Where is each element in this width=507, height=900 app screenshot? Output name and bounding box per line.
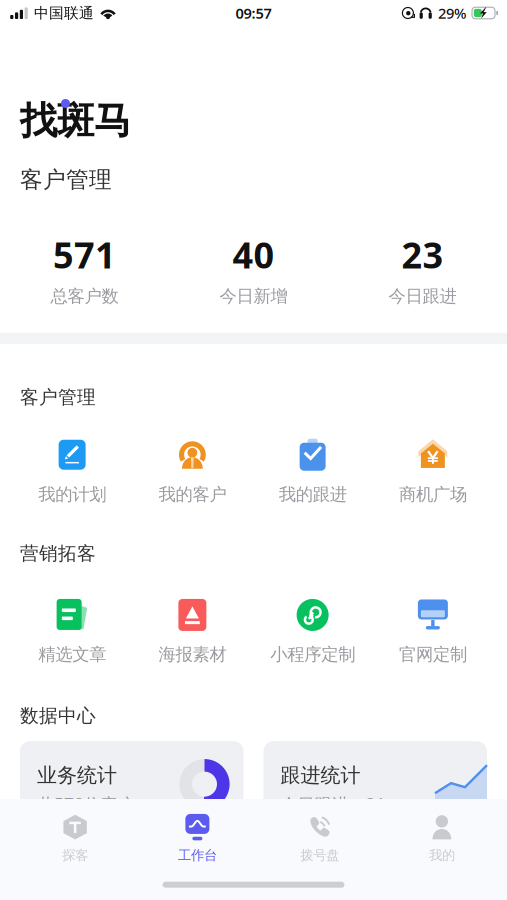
staticText: 总客户数 [50, 285, 118, 307]
staticText: 09:57 [235, 3, 271, 23]
staticText: 精选文章 [38, 644, 106, 665]
button[interactable]: 拨号盘 [258, 814, 381, 863]
staticText: 今日新增 [219, 285, 287, 307]
button[interactable]: 工作台 [136, 814, 258, 863]
staticText: 探客 [62, 847, 88, 863]
staticText: 我的计划 [38, 484, 106, 505]
button[interactable]: 小程序定制 [252, 600, 373, 665]
staticText: 数据中心 [20, 704, 96, 727]
button[interactable]: 海报素材 [132, 600, 252, 665]
staticText: 找斑马 [20, 98, 131, 144]
staticText: 官网定制 [399, 644, 467, 665]
button[interactable]: 我的跟进 [252, 440, 373, 505]
staticText: 今日跟进 [388, 285, 456, 307]
staticText: 拨号盘 [300, 847, 339, 863]
button[interactable]: 业务统计 [20, 741, 243, 861]
staticText: 中国联通 [34, 4, 94, 22]
staticText: 小程序定制 [270, 644, 355, 665]
staticText: 客户管理 [20, 166, 112, 194]
staticText: 我的跟进 [279, 484, 347, 505]
button[interactable]: 精选文章 [12, 600, 132, 665]
staticText: 29% [438, 3, 466, 23]
staticText: 571 [53, 231, 116, 278]
staticText: 40 [232, 231, 274, 278]
button[interactable]: 我的计划 [12, 440, 132, 505]
staticText: 业务统计 [37, 763, 117, 788]
staticText: 客户管理 [20, 386, 96, 409]
staticText: 23 [401, 231, 443, 278]
staticText: 海报素材 [158, 644, 226, 665]
staticText: 营销拓客 [20, 542, 96, 565]
staticText: 商机广场 [399, 484, 467, 505]
staticText: 跟进统计 [280, 763, 360, 788]
button[interactable]: 我的客户 [132, 440, 252, 505]
button[interactable]: 我的 [381, 814, 503, 863]
staticText: 今日跟进：21 [280, 793, 385, 816]
staticText: 工作台 [178, 847, 217, 863]
staticText: 我的客户 [158, 484, 226, 505]
button[interactable]: 商机广场 [373, 440, 493, 505]
button[interactable]: 官网定制 [373, 600, 493, 665]
staticText: 我的 [429, 847, 455, 863]
button[interactable]: 跟进统计 [263, 741, 487, 861]
button[interactable]: 探客 [14, 814, 136, 863]
staticText: 共578位客户 [37, 793, 135, 816]
